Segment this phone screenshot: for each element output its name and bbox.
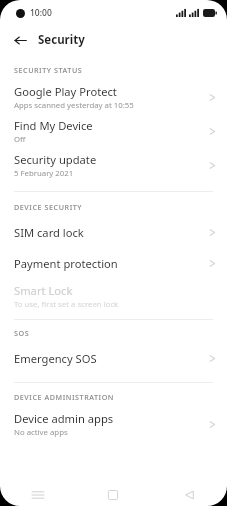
staticText: Security update xyxy=(14,152,97,167)
staticText: DEVICE ADMINISTRATION xyxy=(14,392,114,402)
button[interactable]: Device admin apps xyxy=(0,407,227,441)
staticText: DEVICE SECURITY xyxy=(14,202,83,212)
button[interactable]: Payment protection xyxy=(0,248,227,279)
staticText: SIM card lock xyxy=(14,225,84,240)
button[interactable]: Home xyxy=(75,483,151,506)
staticText: 5 February 2021 xyxy=(14,168,74,179)
button[interactable]: Recent apps xyxy=(0,483,75,506)
button[interactable]: Emergency SOS xyxy=(0,343,227,374)
staticText: Apps scanned yesterday at 10:55 xyxy=(14,100,134,111)
button[interactable]: SIM card lock xyxy=(0,217,227,248)
staticText: Security xyxy=(38,32,85,48)
button[interactable]: Security update xyxy=(0,148,227,182)
staticText: Payment protection xyxy=(14,256,118,271)
staticText: Device admin apps xyxy=(14,411,114,426)
staticText: Google Play Protect xyxy=(14,84,117,99)
staticText: SOS xyxy=(14,328,30,338)
staticText: No active apps xyxy=(14,427,68,438)
button[interactable]: Google Play Protect xyxy=(0,80,227,114)
staticText: Emergency SOS xyxy=(14,351,97,366)
button[interactable]: Find My Device xyxy=(0,114,227,148)
staticText: 10:00 xyxy=(30,7,52,19)
staticText: To use, first set a screen lock xyxy=(14,299,119,310)
staticText: SECURITY STATUS xyxy=(14,65,83,75)
button[interactable]: Back xyxy=(151,483,227,506)
staticText: Smart Lock xyxy=(14,283,73,298)
button[interactable]: Back xyxy=(8,28,32,52)
staticText: Find My Device xyxy=(14,118,93,133)
staticText: Off xyxy=(14,134,26,145)
button[interactable]: Smart Lock xyxy=(0,279,227,313)
